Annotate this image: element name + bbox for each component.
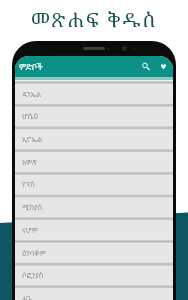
button[interactable]: Search bbox=[139, 60, 152, 73]
button[interactable]: ኢዮኤል bbox=[15, 127, 173, 150]
staticText: ሐጌ bbox=[22, 293, 33, 300]
button[interactable]: ሆሴዕ bbox=[15, 104, 173, 127]
staticText: መጽሐፍ ቅዱስ bbox=[31, 6, 157, 33]
staticText: ኢዮኤል bbox=[22, 134, 43, 144]
staticText: አሞጽ bbox=[22, 157, 37, 167]
staticText: ምድቦች bbox=[19, 61, 43, 73]
staticText: ዳንኤል bbox=[22, 89, 42, 99]
button[interactable]: ዕንባቆም bbox=[15, 241, 173, 264]
staticText: ዮናስ bbox=[22, 179, 35, 189]
button[interactable]: ዳንኤል bbox=[15, 82, 173, 105]
button[interactable]: ናሆም bbox=[15, 218, 173, 241]
button[interactable]: ሶፎንያስ bbox=[15, 263, 173, 286]
button[interactable]: ዮናስ bbox=[15, 172, 173, 195]
staticText: ሚክያስ bbox=[22, 202, 43, 212]
button[interactable]: ሐጌ bbox=[15, 286, 173, 300]
staticText: ናሆም bbox=[22, 225, 39, 235]
button[interactable]: አሞጽ bbox=[15, 150, 173, 173]
staticText: ሆሴዕ bbox=[22, 111, 39, 121]
button[interactable]: Favorites bbox=[157, 60, 170, 73]
staticText: ሶፎንያስ bbox=[22, 270, 44, 280]
button[interactable]: ሚክያስ bbox=[15, 195, 173, 218]
staticText: ዕንባቆም bbox=[22, 248, 46, 258]
